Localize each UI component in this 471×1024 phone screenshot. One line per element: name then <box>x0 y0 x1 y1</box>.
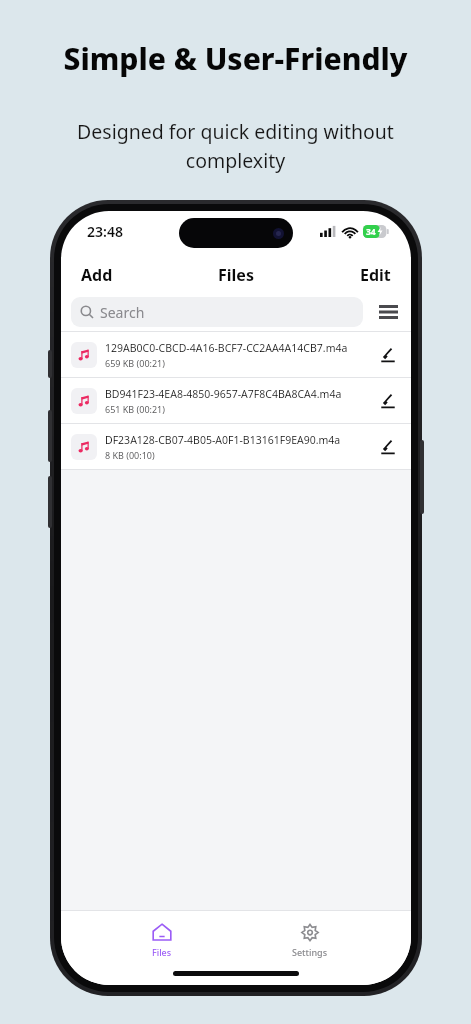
button[interactable]: DF23A128-CB07-4B05-A0F1-B13161F9EA90.m4a <box>61 424 411 469</box>
staticText: Simple & User-Friendly <box>63 38 408 79</box>
button[interactable]: Edit file <box>375 342 401 368</box>
button[interactable]: Menu <box>373 297 403 327</box>
staticText: 34 <box>366 226 376 238</box>
staticText: Settings <box>292 946 328 958</box>
staticText: 8 KB (00:10) <box>105 449 155 461</box>
staticText: BD941F23-4EA8-4850-9657-A7F8C4BA8CA4.m4a <box>105 387 342 401</box>
button[interactable]: Settings <box>262 919 358 961</box>
staticText: DF23A128-CB07-4B05-A0F1-B13161F9EA90.m4a <box>105 433 341 447</box>
staticText: 129AB0C0-CBCD-4A16-BCF7-CC2AA4A14CB7.m4a <box>105 341 348 355</box>
button[interactable]: Files <box>114 919 210 961</box>
staticText: Files <box>152 946 172 958</box>
button[interactable]: Edit file <box>375 388 401 414</box>
staticText: 659 KB (00:21) <box>105 357 165 369</box>
staticText: Add <box>81 264 113 286</box>
button[interactable]: 129AB0C0-CBCD-4A16-BCF7-CC2AA4A14CB7.m4a <box>61 332 411 377</box>
staticText: Designed for quick editing without compl… <box>26 118 445 173</box>
staticText: Edit <box>360 264 391 286</box>
button[interactable]: BD941F23-4EA8-4850-9657-A7F8C4BA8CA4.m4a <box>61 378 411 423</box>
button[interactable]: Add <box>75 260 119 290</box>
button[interactable]: Edit <box>354 260 397 290</box>
staticText: 651 KB (00:21) <box>105 403 165 415</box>
staticText: Search <box>100 303 145 322</box>
button[interactable]: Edit file <box>375 434 401 460</box>
staticText: 23:48 <box>87 222 123 241</box>
staticText: Files <box>218 264 254 286</box>
button[interactable]: Search <box>71 297 363 327</box>
